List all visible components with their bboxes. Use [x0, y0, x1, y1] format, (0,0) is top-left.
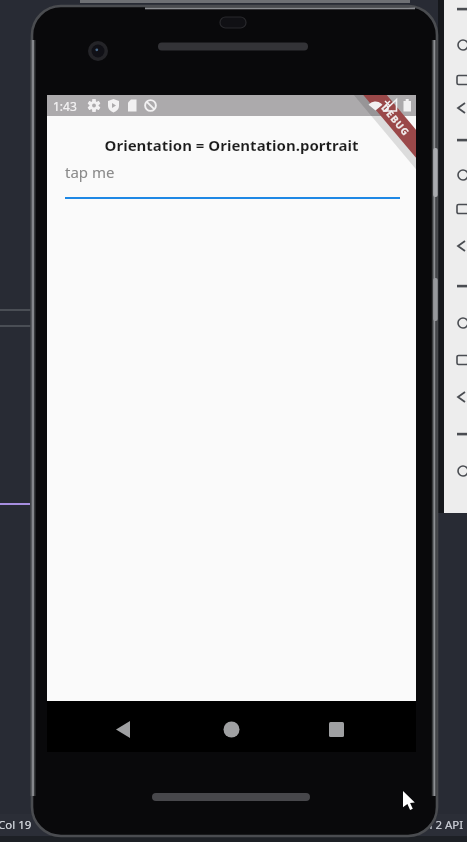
- staticText: Orientation = Orientation.portrait: [47, 135, 416, 155]
- staticText: tap me: [65, 162, 115, 182]
- button[interactable]: [321, 714, 352, 745]
- button[interactable]: [108, 714, 139, 745]
- button[interactable]: [216, 714, 247, 745]
- staticText: Col 19: [0, 817, 32, 833]
- staticText: 1:43: [53, 98, 77, 114]
- staticText: el 2 API: [423, 817, 464, 833]
- button[interactable]: tap me: [65, 161, 400, 201]
- staticText: DEBUG: [378, 102, 413, 139]
